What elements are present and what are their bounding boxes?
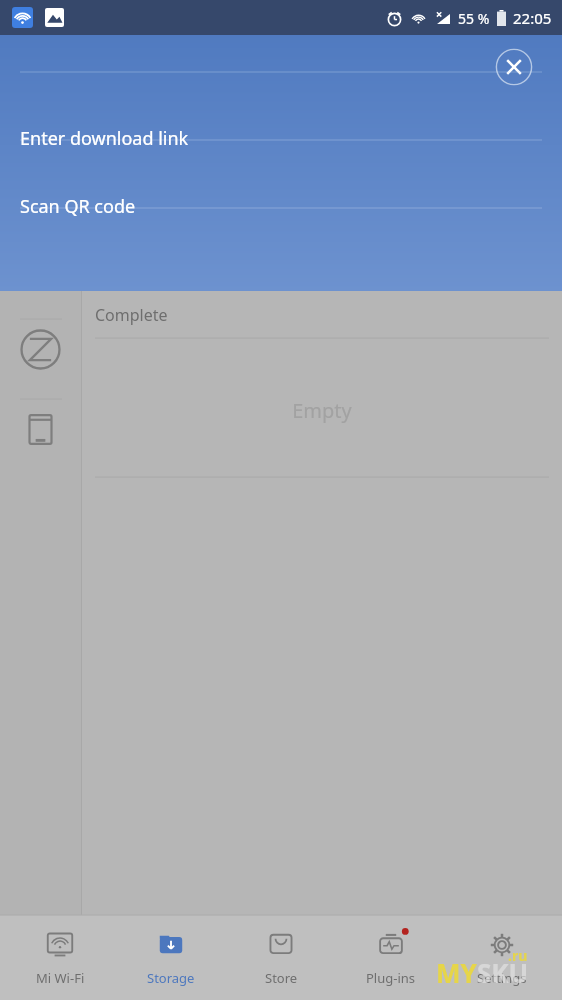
- button[interactable]: Close: [494, 47, 534, 87]
- staticText: .ru: [508, 946, 528, 965]
- staticText: MY: [436, 955, 477, 990]
- staticText: Storage: [147, 969, 195, 987]
- button[interactable]: Blocked downloads: [13, 322, 68, 377]
- button[interactable]: All downloads: [0, 291, 81, 331]
- staticText: Mi Wi-Fi: [36, 969, 85, 987]
- button[interactable]: Scan QR code: [0, 172, 562, 240]
- button[interactable]: Store: [231, 915, 331, 1000]
- button[interactable]: Plug-ins: [341, 915, 441, 1000]
- staticText: 22:05: [513, 8, 552, 28]
- staticText: 55 %: [458, 9, 490, 28]
- staticText: SKU: [477, 955, 529, 990]
- button[interactable]: Enter download link: [0, 104, 562, 172]
- staticText: Scan QR code: [20, 194, 136, 219]
- button[interactable]: Device storage: [13, 402, 68, 457]
- staticText: Store: [265, 969, 298, 987]
- button[interactable]: Storage: [121, 915, 221, 1000]
- staticText: Plug-ins: [366, 969, 416, 987]
- staticText: Settings: [477, 969, 527, 987]
- staticText: Complete: [95, 304, 168, 326]
- staticText: Enter download link: [20, 126, 189, 151]
- button[interactable]: Settings: [452, 915, 552, 1000]
- button[interactable]: Mi Wi-Fi: [10, 915, 110, 1000]
